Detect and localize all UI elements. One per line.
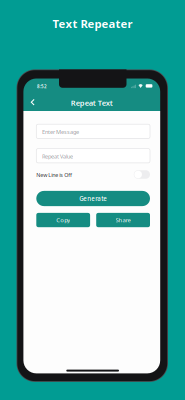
button[interactable]: Back bbox=[26, 95, 39, 109]
button[interactable]: Generate bbox=[36, 191, 150, 206]
staticText: Enter Message bbox=[42, 128, 79, 136]
staticText: Repeat Text bbox=[71, 97, 113, 108]
staticText: Copy bbox=[56, 216, 70, 224]
staticText: Share bbox=[116, 216, 131, 224]
button[interactable]: Toggle new line bbox=[134, 170, 150, 179]
staticText: New Line is Off bbox=[36, 171, 72, 179]
button[interactable]: Share bbox=[96, 213, 150, 227]
staticText: Repeat Value bbox=[42, 152, 73, 160]
staticText: Text Repeater bbox=[52, 16, 132, 31]
button[interactable]: Copy bbox=[36, 213, 90, 227]
staticText: 8:52 bbox=[37, 83, 47, 89]
staticText: Generate bbox=[79, 194, 107, 203]
